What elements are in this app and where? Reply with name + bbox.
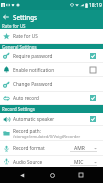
button[interactable]: Change Password — [0, 77, 103, 91]
button[interactable]: Auto record — [0, 92, 103, 104]
staticText: Record Settings — [2, 106, 35, 112]
staticText: Record format — [13, 145, 45, 151]
button[interactable]: AMR — [70, 144, 97, 152]
button[interactable]: Require password — [0, 49, 103, 62]
button[interactable]: Toggle — [90, 67, 96, 73]
staticText: Change Password — [13, 81, 96, 87]
staticText: General Settings — [2, 44, 37, 49]
button[interactable]: Home — [44, 167, 60, 183]
staticText: Record path: — [13, 128, 41, 134]
staticText: AMR — [74, 145, 85, 152]
button[interactable]: Recent apps — [73, 167, 89, 183]
button[interactable]: Record path: — [0, 126, 103, 140]
staticText: Auto record — [13, 95, 90, 101]
button[interactable]: Record format — [0, 141, 103, 155]
button[interactable]: Rate for US — [0, 29, 103, 43]
staticText: Audio Source — [13, 159, 43, 165]
button[interactable]: Back — [0, 11, 11, 22]
button[interactable]: Toggle — [90, 95, 96, 101]
staticText: Require password — [13, 53, 90, 59]
staticText: Rate for US — [13, 33, 96, 39]
staticText: 18:19 — [89, 2, 102, 9]
staticText: MIC — [74, 159, 84, 166]
staticText: Settings — [13, 13, 38, 21]
staticText: /storage/emulated/0/VoigtRecorder — [13, 134, 81, 139]
button[interactable]: MIC — [70, 158, 97, 166]
button[interactable]: Toggle — [90, 116, 96, 122]
button[interactable]: Enable notification — [0, 63, 103, 76]
button[interactable]: Audio Source — [0, 156, 103, 167]
staticText: Enable notification — [13, 67, 90, 73]
staticText: Rate for US — [2, 23, 26, 29]
button[interactable]: Toggle — [90, 53, 96, 59]
staticText: Automatic speaker — [13, 116, 90, 122]
button[interactable]: Automatic speaker — [0, 113, 103, 125]
button[interactable]: Back — [14, 167, 30, 183]
